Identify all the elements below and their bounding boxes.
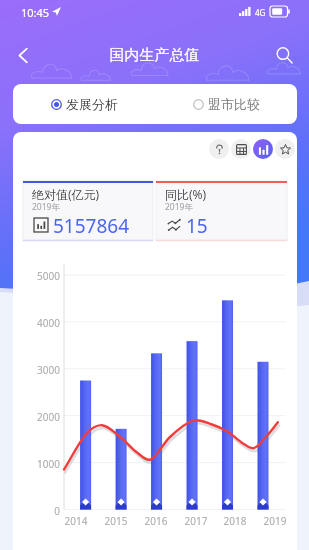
- button[interactable]: Chart view: [253, 139, 273, 159]
- staticText: 0: [13, 504, 60, 518]
- button[interactable]: Table view: [231, 139, 251, 159]
- staticText: 盟市比较: [208, 96, 260, 112]
- staticText: 3000: [13, 363, 60, 377]
- staticText: 2015: [100, 514, 132, 528]
- staticText: 2019: [259, 514, 291, 528]
- staticText: 发展分析: [66, 96, 118, 112]
- staticText: 2018: [219, 514, 251, 528]
- staticText: 绝对值(亿元): [32, 186, 100, 202]
- staticText: 2000: [13, 410, 60, 424]
- button[interactable]: 盟市比较: [155, 84, 297, 124]
- staticText: 5157864: [53, 213, 130, 239]
- button[interactable]: Back: [6, 38, 40, 72]
- staticText: 国内生产总值: [0, 46, 309, 65]
- staticText: 同比(%): [165, 186, 207, 202]
- staticText: 10:45: [21, 5, 50, 20]
- button[interactable]: 同比(%): [156, 181, 287, 241]
- staticText: 4G: [255, 7, 266, 18]
- staticText: 4000: [13, 316, 60, 330]
- button[interactable]: 发展分析: [13, 84, 155, 124]
- staticText: 15: [186, 213, 208, 239]
- staticText: 2019年: [165, 201, 193, 213]
- staticText: 2019年: [32, 201, 60, 213]
- button[interactable]: Search: [267, 38, 301, 72]
- staticText: 5000: [13, 269, 60, 283]
- button[interactable]: 绝对值(亿元): [23, 181, 153, 241]
- staticText: 2017: [180, 514, 212, 528]
- button[interactable]: Favorite: [275, 139, 295, 159]
- staticText: 1000: [13, 457, 60, 471]
- button[interactable]: Help: [209, 139, 229, 159]
- staticText: 2014: [60, 514, 92, 528]
- staticText: 2016: [140, 514, 172, 528]
